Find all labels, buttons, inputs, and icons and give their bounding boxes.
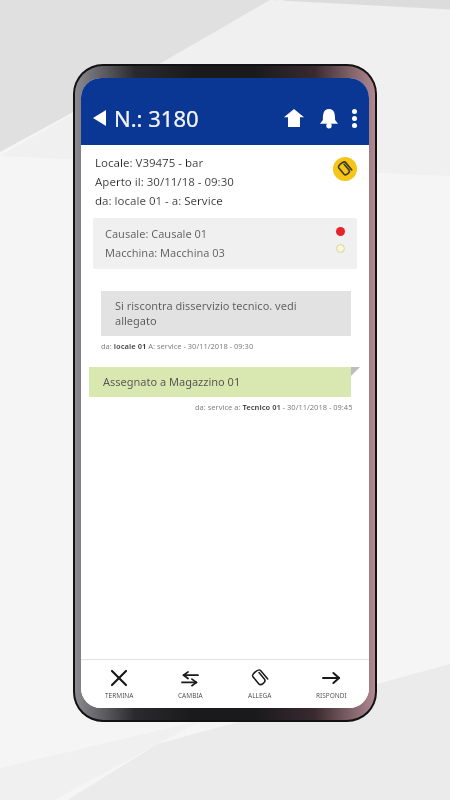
staticText: TERMINA xyxy=(105,691,134,700)
button[interactable]: Assegnato a Magazzino 01 xyxy=(89,367,351,397)
button[interactable]: Allegati xyxy=(333,157,357,181)
button[interactable]: Causale: Causale 01 xyxy=(93,218,357,269)
staticText: N.: 3180 xyxy=(114,103,199,133)
button[interactable]: TERMINA xyxy=(87,665,151,704)
staticText: Causale: Causale 01 xyxy=(105,226,208,241)
staticText: da: locale 01 A: service - 30/11/2018 - … xyxy=(101,341,254,351)
button[interactable]: RISPONDI xyxy=(299,665,363,704)
button[interactable]: Back N.: 3180 xyxy=(81,99,205,137)
button[interactable]: ALLEGA xyxy=(228,665,292,704)
button[interactable]: CAMBIA xyxy=(158,665,222,704)
staticText: Aperto il: 30/11/18 - 09:30 xyxy=(95,174,234,190)
staticText: Assegnato a Magazzino 01 xyxy=(103,374,241,389)
button[interactable]: More options xyxy=(346,103,369,134)
button[interactable]: Notifications xyxy=(314,103,344,134)
button[interactable]: Home xyxy=(278,103,310,133)
staticText: da: service a: Tecnico 01 - 30/11/2018 -… xyxy=(195,402,353,412)
button[interactable]: Si riscontra disservizio tecnico. vedi a… xyxy=(101,291,351,336)
staticText: da: locale 01 - a: Service xyxy=(95,193,223,209)
staticText: Si riscontra disservizio tecnico. vedi a… xyxy=(115,298,339,328)
staticText: Macchina: Macchina 03 xyxy=(105,245,225,260)
staticText: RISPONDI xyxy=(316,691,347,700)
staticText: Locale: V39475 - bar xyxy=(95,155,204,171)
staticText: CAMBIA xyxy=(178,691,203,700)
staticText: ALLEGA xyxy=(248,691,272,700)
